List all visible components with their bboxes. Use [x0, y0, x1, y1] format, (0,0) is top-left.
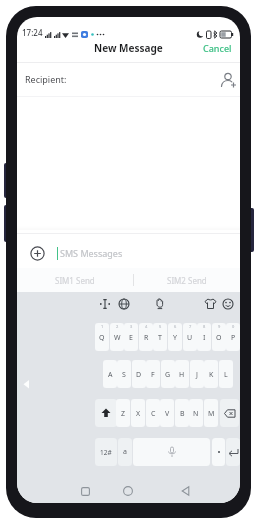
button[interactable]: Cancel — [203, 39, 240, 57]
staticText: V — [165, 409, 170, 419]
button[interactable]: S — [117, 360, 131, 388]
staticText: Recipient: — [25, 73, 67, 85]
staticText: L — [224, 370, 228, 380]
button[interactable]: 8 — [197, 323, 211, 351]
button[interactable]: a — [118, 438, 132, 466]
staticText: J — [196, 370, 198, 380]
button[interactable] — [226, 438, 240, 466]
staticText: E — [129, 333, 133, 343]
staticText: SIM2 Send — [167, 275, 207, 286]
staticText: I — [203, 333, 206, 343]
button[interactable]: H — [175, 360, 189, 388]
staticText: B — [180, 409, 185, 419]
staticText: a — [123, 447, 127, 457]
button[interactable]: X — [131, 399, 145, 427]
button[interactable]: D — [132, 360, 146, 388]
staticText: T — [158, 333, 162, 343]
button[interactable] — [115, 295, 133, 313]
button[interactable] — [133, 438, 210, 466]
staticText: 4 — [145, 324, 148, 329]
staticText: 1 — [101, 324, 104, 329]
staticText: Cancel — [203, 42, 232, 54]
button[interactable]: L — [219, 360, 233, 388]
staticText: 12# — [100, 448, 112, 457]
button[interactable]: C — [146, 399, 160, 427]
button[interactable] — [95, 399, 117, 427]
button[interactable]: SMS Messages — [17, 231, 240, 268]
staticText: P — [231, 333, 236, 343]
staticText: 17:24 — [22, 27, 43, 38]
staticText: O — [216, 333, 222, 343]
button[interactable] — [212, 438, 225, 466]
staticText: C — [151, 409, 156, 419]
button[interactable] — [17, 372, 35, 396]
staticText: SMS Messages — [60, 247, 123, 259]
button[interactable] — [75, 481, 95, 501]
staticText: W — [114, 333, 121, 343]
button[interactable]: M — [204, 399, 218, 427]
button[interactable] — [96, 295, 114, 313]
button[interactable]: 7 — [183, 323, 197, 351]
staticText: U — [187, 333, 193, 343]
button[interactable]: G — [161, 360, 175, 388]
staticText: H — [179, 370, 185, 380]
button[interactable]: 5 — [153, 323, 167, 351]
staticText: F — [151, 370, 155, 380]
staticText: N — [193, 409, 199, 419]
staticText: 6 — [174, 324, 177, 329]
staticText: 8 — [203, 324, 206, 329]
button[interactable]: B — [175, 399, 189, 427]
button[interactable] — [220, 399, 239, 427]
staticText: A — [108, 370, 113, 380]
button[interactable]: Z — [116, 399, 130, 427]
button[interactable]: 4 — [139, 323, 153, 351]
button[interactable]: 0 — [226, 323, 240, 351]
button[interactable]: 9 — [212, 323, 226, 351]
button[interactable] — [201, 295, 219, 313]
staticText: G — [165, 370, 171, 380]
button[interactable]: F — [146, 360, 160, 388]
button[interactable]: SIM2 Send — [133, 268, 240, 292]
staticText: K — [209, 370, 214, 380]
staticText: SIM1 Send — [55, 275, 95, 286]
button[interactable]: 6 — [168, 323, 182, 351]
staticText: Z — [121, 409, 126, 419]
button[interactable]: SIM1 Send — [17, 268, 133, 292]
button[interactable]: K — [204, 360, 218, 388]
button[interactable]: A — [103, 360, 117, 388]
button[interactable]: 3 — [124, 323, 138, 351]
staticText: S — [122, 370, 126, 380]
staticText: 7 — [189, 324, 192, 329]
button[interactable]: 12# — [95, 438, 117, 466]
button[interactable] — [118, 481, 138, 501]
staticText: 2 — [116, 324, 119, 329]
button[interactable]: 1 — [95, 323, 109, 351]
staticText: Q — [99, 333, 105, 343]
button[interactable] — [27, 243, 48, 264]
staticText: Y — [173, 333, 177, 343]
button[interactable]: Recipient: — [17, 63, 240, 96]
button[interactable]: 2 — [110, 323, 124, 351]
staticText: X — [136, 409, 141, 419]
button[interactable]: J — [190, 360, 204, 388]
staticText: 9 — [218, 324, 221, 329]
button[interactable] — [151, 295, 169, 313]
button[interactable]: N — [189, 399, 203, 427]
button[interactable]: V — [160, 399, 174, 427]
staticText: 0 — [232, 324, 235, 329]
staticText: M — [208, 409, 215, 419]
button[interactable] — [219, 295, 237, 313]
staticText: New Message — [94, 41, 163, 55]
staticText: 5 — [159, 324, 162, 329]
button[interactable] — [176, 481, 196, 501]
staticText: D — [136, 370, 142, 380]
staticText: R — [144, 333, 149, 343]
staticText: 3 — [130, 324, 133, 329]
